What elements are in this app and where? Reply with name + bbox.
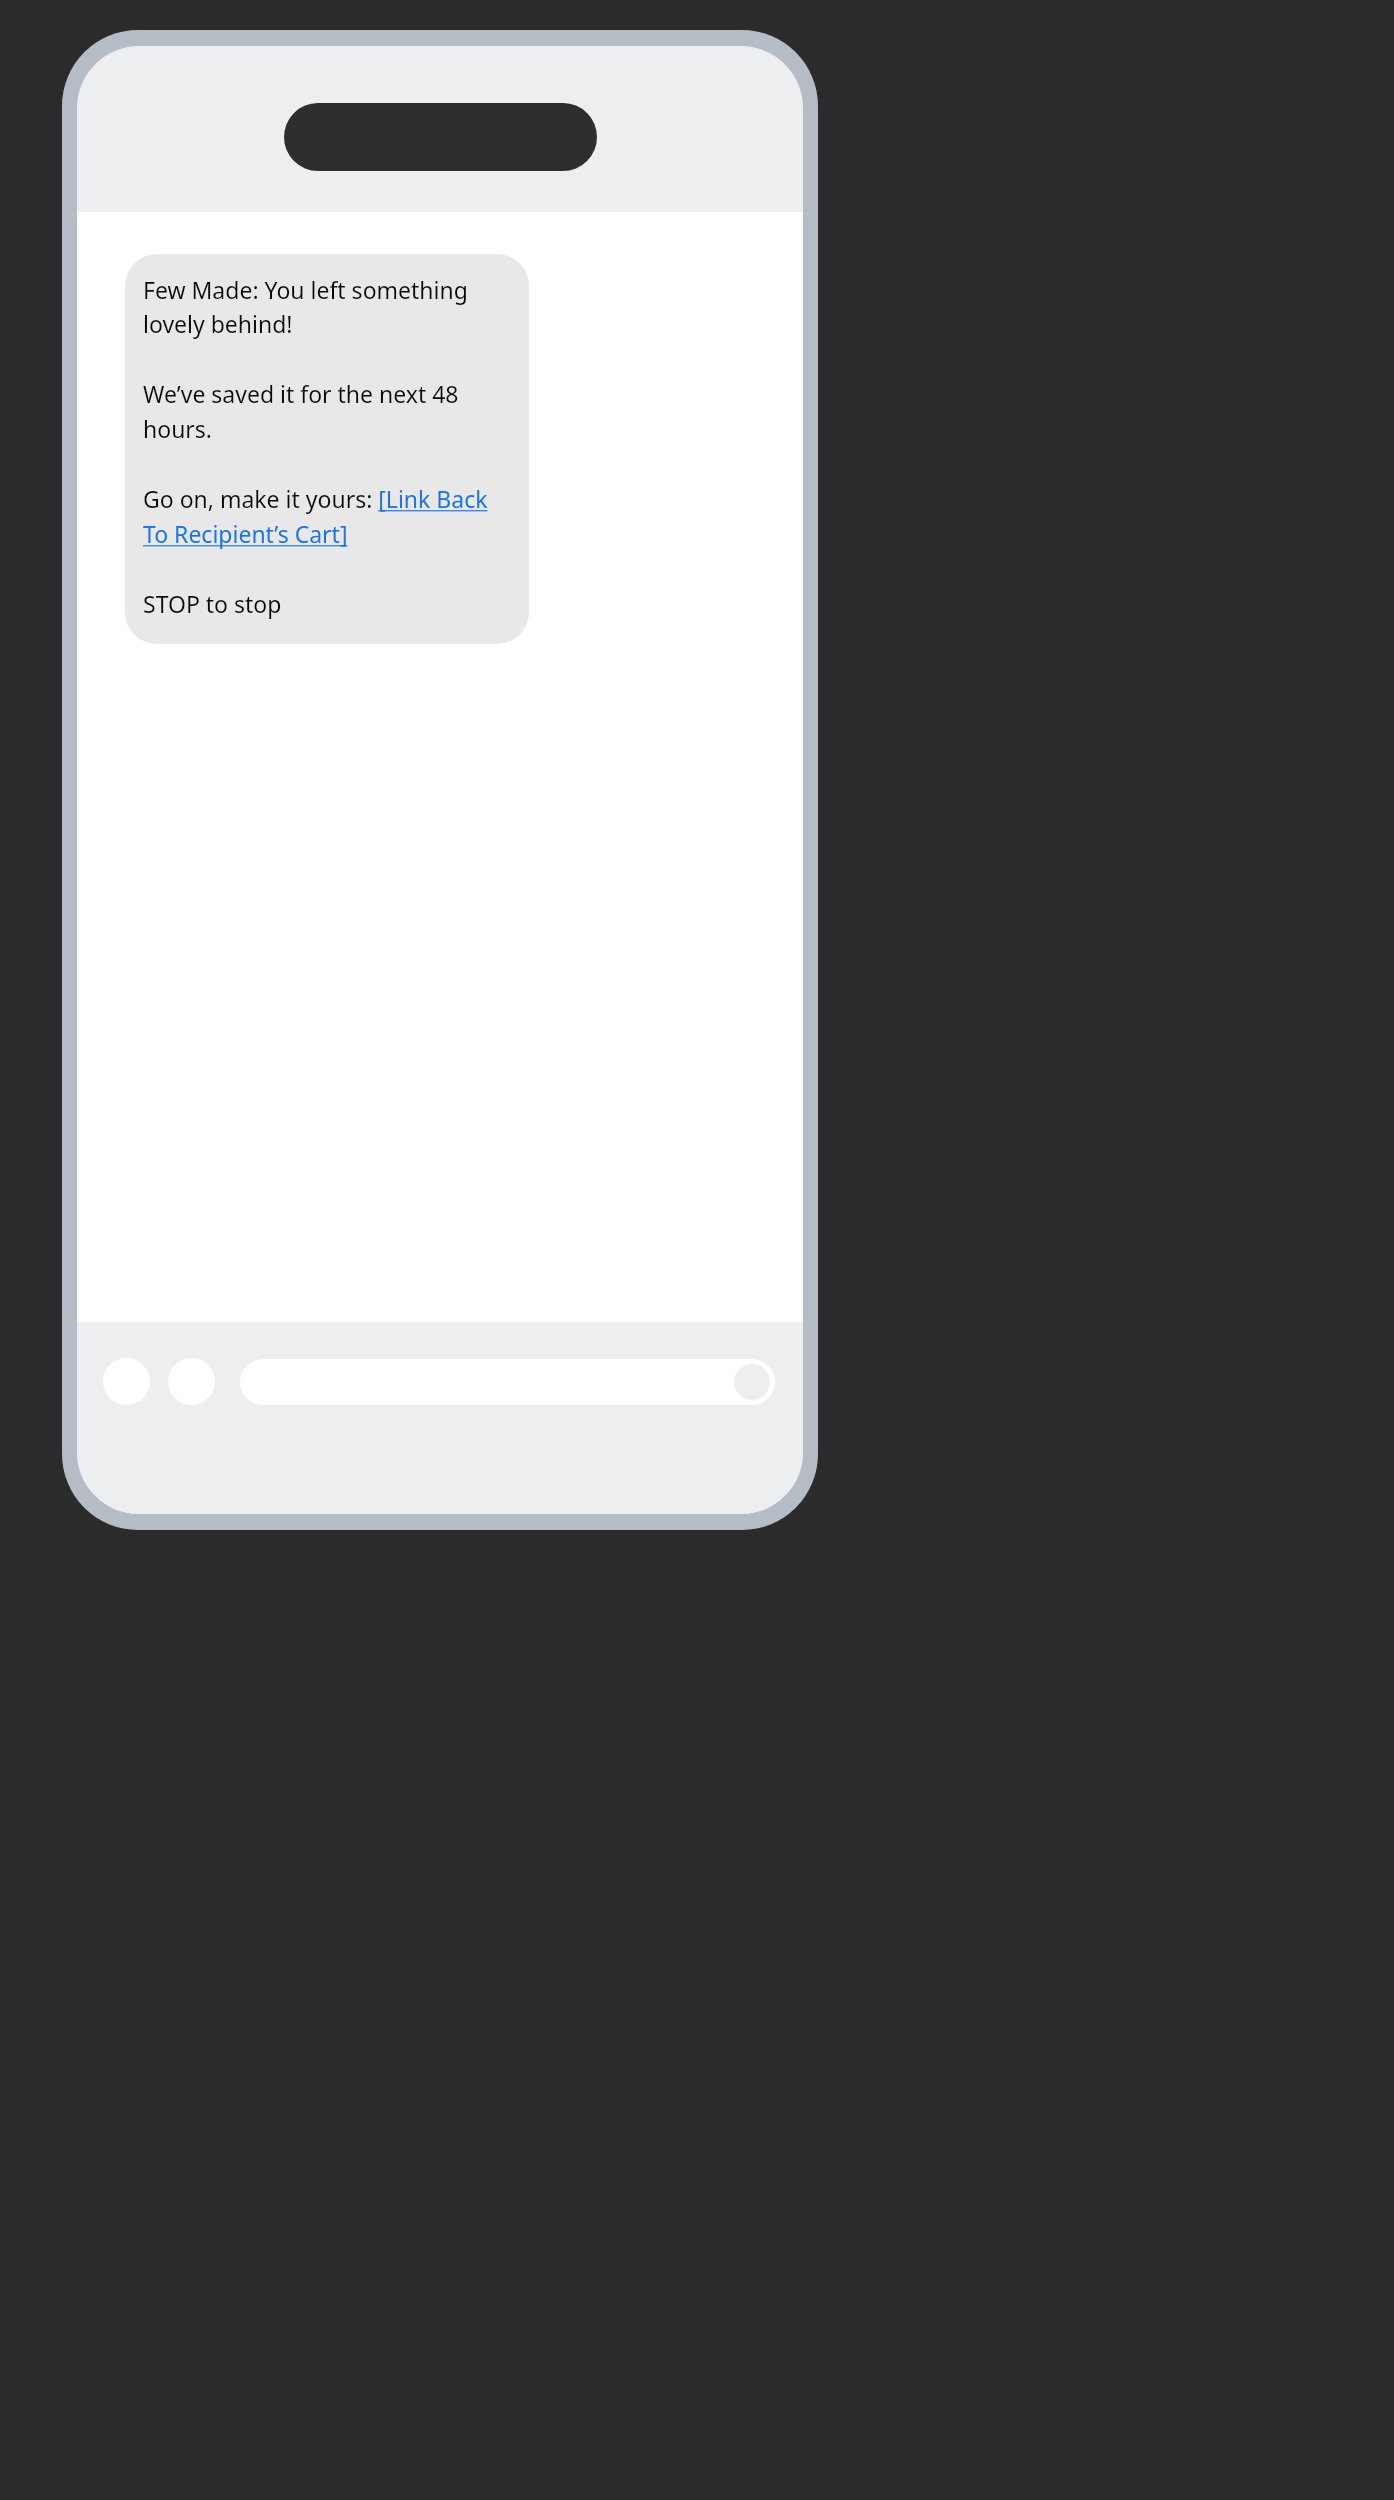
- button[interactable]: Few Made: You left something lovely behi…: [125, 254, 529, 644]
- button[interactable]: Camera: [103, 1358, 150, 1405]
- staticText: Few Made: You left something lovely behi…: [143, 274, 513, 620]
- button[interactable]: Text message input: [240, 1359, 775, 1405]
- button[interactable]: Gallery: [168, 1358, 215, 1405]
